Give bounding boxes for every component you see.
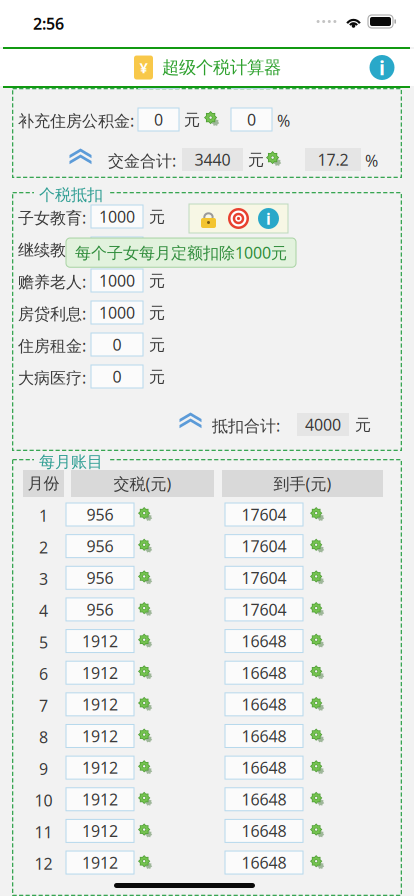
staticText: 4 bbox=[39, 600, 48, 621]
staticText: 17604 bbox=[241, 504, 286, 525]
staticText: 交税(元) bbox=[113, 473, 171, 494]
staticText: 16648 bbox=[241, 757, 286, 778]
button[interactable]: 说明 bbox=[258, 208, 279, 229]
staticText: 元 bbox=[184, 110, 200, 130]
staticText: 7 bbox=[39, 695, 48, 716]
staticText: 1000 bbox=[99, 206, 135, 227]
staticText: 11 bbox=[34, 821, 52, 843]
staticText: 元 bbox=[149, 239, 165, 259]
staticText: 2:56 bbox=[33, 13, 64, 34]
staticText: 继续教育: bbox=[18, 239, 86, 260]
staticText: 17.2 bbox=[317, 149, 348, 170]
staticText: 1000 bbox=[99, 302, 135, 323]
staticText: 9 bbox=[39, 758, 48, 779]
staticText: 月份 bbox=[27, 474, 59, 493]
staticText: 10 bbox=[34, 790, 52, 811]
staticText: 房贷利息: bbox=[18, 303, 86, 324]
staticText: 2 bbox=[39, 537, 48, 558]
staticText: 400 bbox=[103, 238, 130, 259]
staticText: 每月账目 bbox=[39, 452, 103, 472]
staticText: 元 bbox=[355, 415, 371, 435]
staticText: 1912 bbox=[82, 852, 118, 873]
staticText: 16648 bbox=[241, 789, 286, 810]
staticText: 1912 bbox=[82, 820, 118, 841]
staticText: 12 bbox=[34, 853, 52, 874]
staticText: 住房租金: bbox=[18, 335, 86, 356]
staticText: 0 bbox=[154, 109, 163, 130]
staticText: 956 bbox=[86, 567, 113, 588]
staticText: 元 bbox=[149, 303, 165, 323]
button[interactable]: 使用说明 bbox=[364, 50, 400, 85]
staticText: 元 bbox=[149, 271, 165, 291]
staticText: 3440 bbox=[194, 149, 230, 170]
staticText: 5 bbox=[39, 632, 48, 653]
staticText: i bbox=[266, 208, 271, 229]
staticText: 16648 bbox=[241, 852, 286, 873]
staticText: 17604 bbox=[241, 599, 286, 620]
staticText: 元 bbox=[149, 207, 165, 227]
staticText: % bbox=[365, 150, 378, 171]
staticText: 元 bbox=[248, 150, 264, 170]
button[interactable]: 锁定 bbox=[198, 208, 219, 229]
staticText: 元 bbox=[149, 335, 165, 355]
staticText: 16648 bbox=[241, 725, 286, 747]
staticText: 子女教育: bbox=[18, 207, 86, 228]
staticText: 0 bbox=[112, 366, 121, 387]
staticText: 1912 bbox=[82, 662, 118, 683]
staticText: 1912 bbox=[82, 725, 118, 747]
staticText: 1912 bbox=[82, 630, 118, 652]
staticText: 大病医疗: bbox=[18, 367, 86, 388]
staticText: ¥ bbox=[139, 58, 147, 77]
staticText: 956 bbox=[86, 504, 113, 525]
staticText: i bbox=[379, 54, 385, 81]
staticText: 1000 bbox=[99, 270, 135, 291]
staticText: 6 bbox=[39, 663, 48, 684]
staticText: 0 bbox=[112, 334, 121, 355]
staticText: 17604 bbox=[241, 535, 286, 557]
button[interactable]: 目标 bbox=[228, 208, 249, 229]
staticText: 1912 bbox=[82, 789, 118, 810]
staticText: 3 bbox=[39, 568, 48, 589]
staticText: 16648 bbox=[241, 630, 286, 652]
staticText: 交金合计: bbox=[108, 150, 176, 171]
staticText: 8 bbox=[39, 726, 48, 748]
staticText: 超级个税计算器 bbox=[162, 57, 281, 78]
staticText: 4000 bbox=[305, 414, 341, 435]
staticText: 补充住房公积金: bbox=[18, 110, 134, 131]
staticText: 每个子女每月定额扣除1000元 bbox=[75, 242, 287, 263]
staticText: 1912 bbox=[82, 694, 118, 715]
staticText: 赡养老人: bbox=[18, 271, 86, 292]
staticText: 16648 bbox=[241, 694, 286, 715]
staticText: % bbox=[277, 110, 290, 131]
staticText: 1912 bbox=[82, 757, 118, 778]
staticText: 0 bbox=[247, 109, 256, 130]
staticText: 16648 bbox=[241, 662, 286, 683]
staticText: 元 bbox=[149, 367, 165, 387]
staticText: 个税抵扣 bbox=[39, 185, 103, 205]
staticText: 1 bbox=[39, 505, 48, 526]
staticText: 到手(元) bbox=[273, 473, 331, 494]
staticText: 抵扣合计: bbox=[212, 415, 280, 436]
staticText: 956 bbox=[86, 535, 113, 557]
staticText: 16648 bbox=[241, 820, 286, 841]
staticText: 17604 bbox=[241, 567, 286, 588]
staticText: 956 bbox=[86, 599, 113, 620]
